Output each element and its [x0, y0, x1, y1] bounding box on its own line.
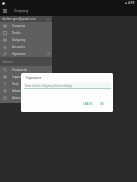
staticText: Outgoing	[14, 9, 29, 13]
button[interactable]: Signature	[0, 50, 52, 57]
button[interactable]: Passwords	[0, 66, 52, 73]
button[interactable]: Compose	[0, 22, 52, 29]
staticText: Servers	[3, 60, 13, 64]
staticText: Enter text for Outgoing Server settings	[25, 84, 73, 88]
staticText: Accounts	[12, 45, 25, 49]
staticText: Signature	[26, 75, 42, 80]
staticText: OK	[100, 102, 104, 106]
button[interactable]: Open navigation drawer	[3, 8, 9, 14]
button[interactable]: Help	[0, 80, 52, 87]
staticText: Drafts	[12, 31, 21, 35]
staticText: Support	[12, 75, 24, 79]
staticText: dcolem.gmx@gmail.com	[2, 17, 36, 21]
staticText: Passwords	[12, 68, 28, 72]
button[interactable]: OK	[98, 101, 106, 107]
staticText: Compose	[12, 24, 26, 28]
button[interactable]: Drafts	[0, 29, 52, 36]
staticText: CANCEL	[83, 102, 93, 106]
staticText: Signature	[12, 52, 26, 56]
button[interactable]: Outgoing	[0, 36, 52, 43]
button[interactable]: dcolem.gmx@gmail.com	[0, 16, 52, 22]
staticText: 4:19	[128, 1, 135, 5]
button[interactable]: About	[0, 94, 52, 101]
staticText: Outgoing	[12, 38, 26, 42]
staticText: Help	[12, 82, 19, 86]
button[interactable]: Advanced	[0, 87, 52, 94]
staticText: Advanced	[12, 89, 26, 93]
button[interactable]: Accounts	[0, 43, 52, 50]
staticText: About	[12, 96, 21, 100]
button[interactable]: CANCEL	[81, 101, 95, 107]
button[interactable]: Support	[0, 73, 52, 80]
